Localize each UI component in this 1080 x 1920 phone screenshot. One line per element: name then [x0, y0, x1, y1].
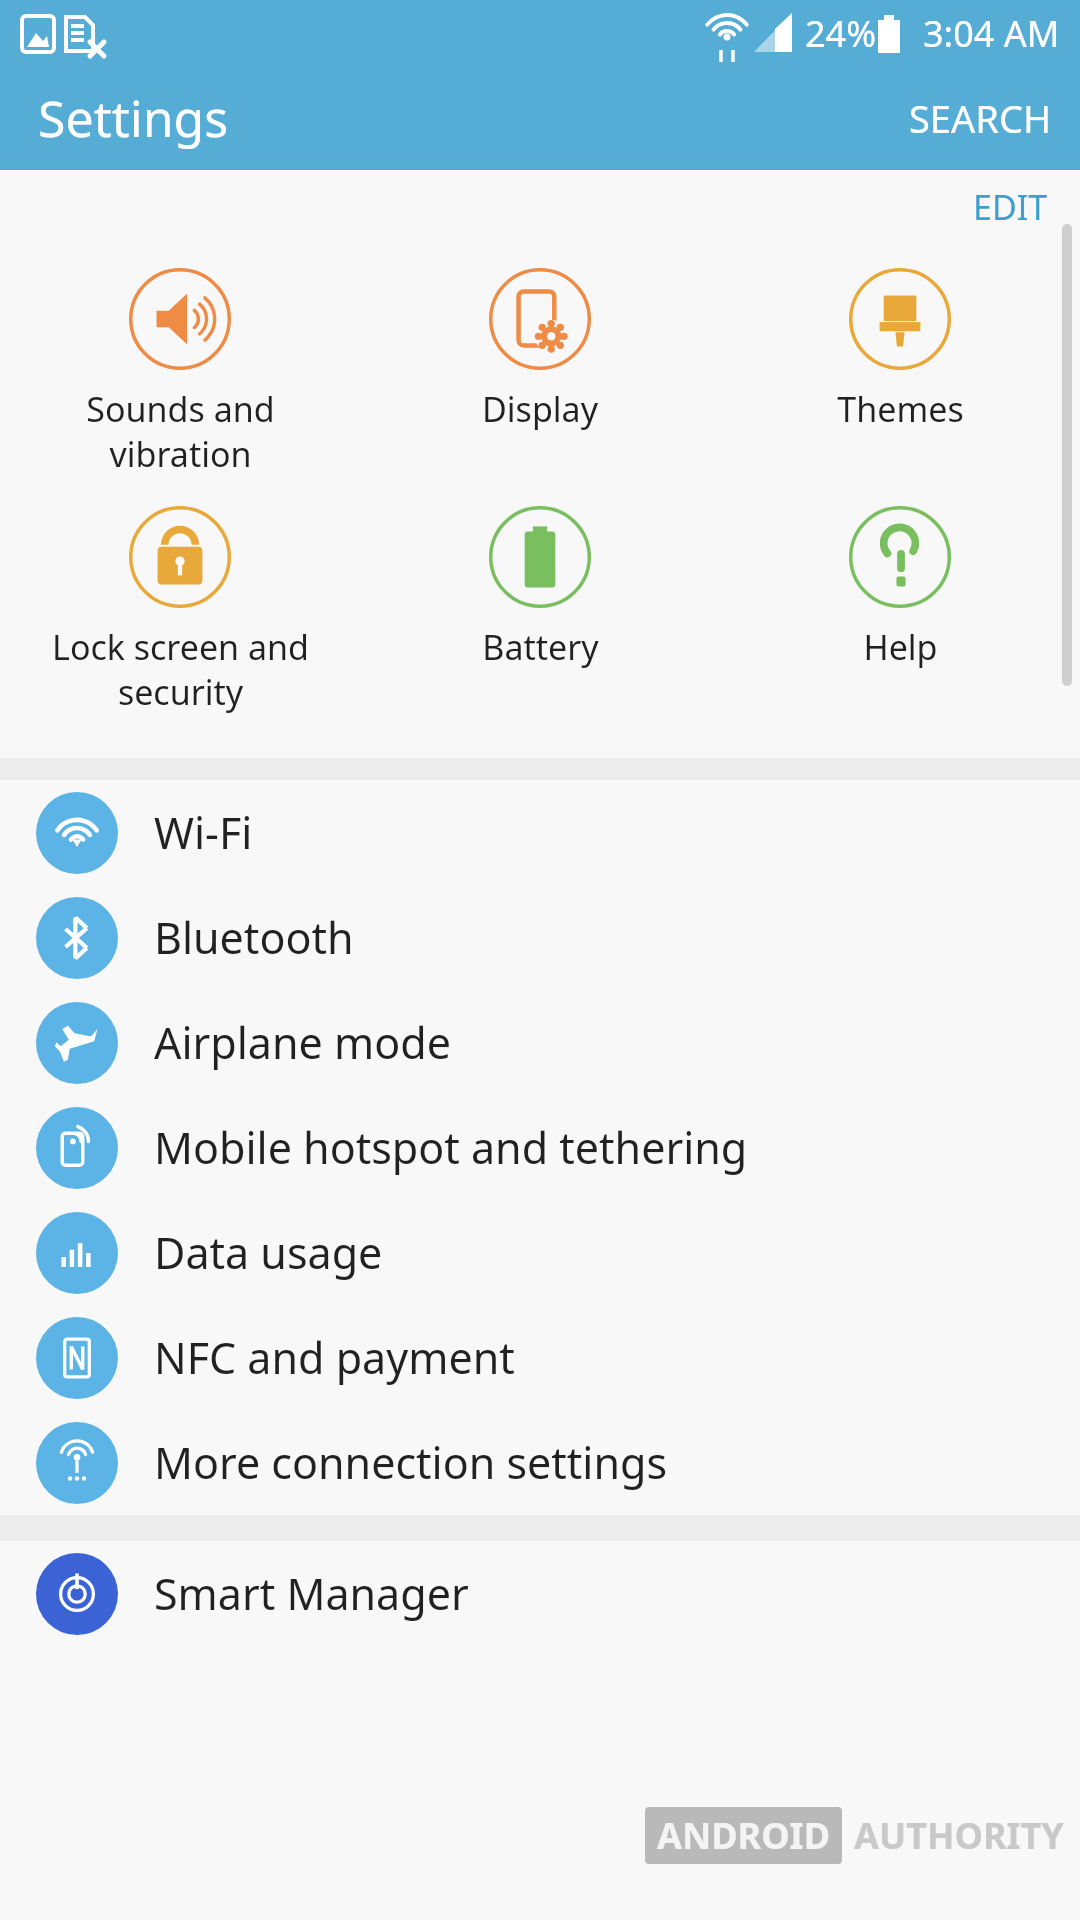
- staticText: Themes: [837, 386, 964, 432]
- button[interactable]: Sounds and vibration: [0, 264, 360, 480]
- staticText: ANDROID: [657, 1811, 830, 1860]
- staticText: Airplane mode: [154, 1013, 451, 1072]
- staticText: Sounds and vibration: [86, 386, 275, 476]
- staticText: Wi-Fi: [154, 803, 253, 862]
- staticText: Settings: [38, 84, 229, 152]
- staticText: 3:04 AM: [923, 9, 1060, 58]
- button[interactable]: Mobile hotspot and tethering: [0, 1095, 1080, 1200]
- button[interactable]: Help: [720, 502, 1080, 674]
- button[interactable]: Themes: [720, 264, 1080, 436]
- staticText: Lock screen and security: [52, 624, 309, 714]
- staticText: 24%: [805, 9, 877, 58]
- button[interactable]: Wi-Fi: [0, 780, 1080, 885]
- staticText: EDIT: [973, 184, 1048, 230]
- button[interactable]: NFC and payment: [0, 1305, 1080, 1410]
- staticText: Smart Manager: [154, 1564, 469, 1623]
- staticText: More connection settings: [154, 1433, 668, 1492]
- button[interactable]: Data usage: [0, 1200, 1080, 1305]
- button[interactable]: Battery: [360, 502, 720, 674]
- button[interactable]: Airplane mode: [0, 990, 1080, 1095]
- staticText: Data usage: [154, 1223, 383, 1282]
- button[interactable]: Lock screen and security: [0, 502, 360, 718]
- button[interactable]: Bluetooth: [0, 885, 1080, 990]
- button[interactable]: Smart Manager: [0, 1541, 1080, 1646]
- button[interactable]: More connection settings: [0, 1410, 1080, 1515]
- staticText: NFC and payment: [154, 1328, 515, 1387]
- staticText: SEARCH: [909, 92, 1052, 144]
- button[interactable]: EDIT: [943, 170, 1080, 238]
- staticText: Battery: [482, 624, 599, 670]
- button[interactable]: SEARCH: [881, 72, 1080, 164]
- staticText: Mobile hotspot and tethering: [154, 1118, 748, 1177]
- staticText: Bluetooth: [154, 908, 354, 967]
- button[interactable]: Display: [360, 264, 720, 436]
- staticText: Display: [482, 386, 598, 432]
- staticText: AUTHORITY: [854, 1811, 1064, 1860]
- staticText: Help: [863, 624, 938, 670]
